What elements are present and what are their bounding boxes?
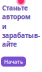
staticText: и зарабатывайте: [2, 22, 40, 49]
button[interactable]: Начать: [1, 57, 26, 67]
staticText: Станьте автором: [2, 3, 31, 21]
staticText: Начать: [4, 58, 23, 65]
